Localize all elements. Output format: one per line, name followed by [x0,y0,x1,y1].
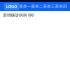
staticText: LOGO [6,4,17,9]
staticText: 菜单三 [43,4,55,9]
staticText: 新增确诊病例 (例) [3,12,34,18]
staticText: 菜单二 [31,4,43,9]
staticText: 菜单四 [55,4,67,9]
staticText: 菜单一 [19,4,31,9]
